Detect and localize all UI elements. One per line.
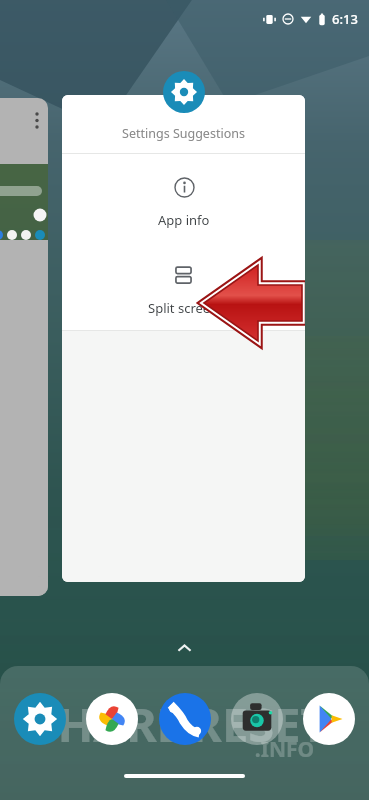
button[interactable]: App info [62,154,305,242]
button[interactable]: Phone [159,693,211,745]
button[interactable]: Open app drawer [175,639,194,658]
staticText: .INFO [100,735,369,764]
button[interactable]: Split screen [62,242,305,330]
other: Settings app icon [163,71,205,113]
staticText: 6:13 [332,10,358,28]
button[interactable]: Settings [14,693,66,745]
button[interactable]: Play Store [303,693,355,745]
button[interactable]: Camera [231,693,283,745]
staticText: Split screen [148,299,219,317]
button[interactable]: Photos [86,693,138,745]
staticText: App info [158,211,210,229]
staticText: HARDRESET [8,692,369,756]
staticText: Settings Suggestions [122,125,245,142]
